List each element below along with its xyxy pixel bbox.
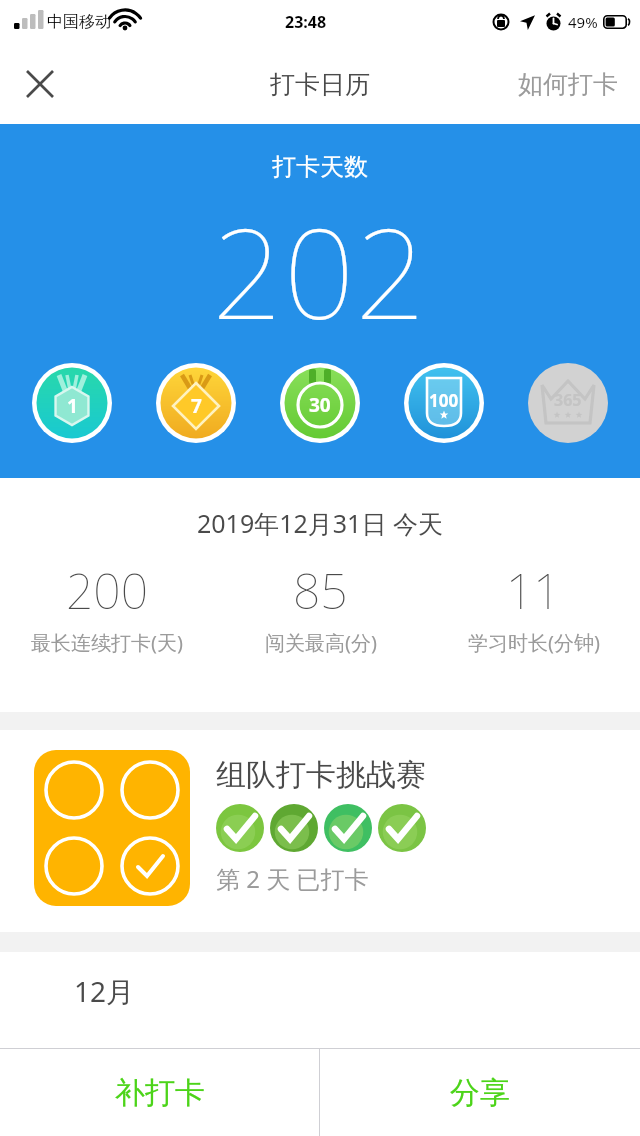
staticText: 85 (293, 558, 348, 623)
button[interactable]: 100 day badge (404, 363, 484, 443)
staticText: 23:48 (285, 11, 327, 33)
staticText: 闯关最高(分) (265, 629, 377, 656)
staticText: 补打卡 (115, 1074, 205, 1112)
other: 7 day badge (156, 363, 236, 443)
staticText: 2019年12月31日 今天 (197, 506, 443, 540)
staticText: 1 (67, 393, 78, 419)
staticText: 30 (309, 392, 331, 418)
other: 1 day badge (32, 363, 112, 443)
staticText: 中国移动 (47, 12, 111, 32)
button[interactable]: 7 day badge (156, 363, 236, 443)
staticText: 最长连续打卡(天) (31, 629, 183, 656)
staticText: 365 (554, 389, 582, 411)
staticText: 100 (429, 389, 459, 412)
staticText: 12月 (74, 972, 135, 1010)
button[interactable]: 如何打卡 (514, 61, 622, 108)
staticText: 打卡日历 (270, 69, 370, 100)
button[interactable]: 分享 (320, 1049, 640, 1136)
other: 30 day badge (280, 363, 360, 443)
button[interactable]: 1 day badge (32, 363, 112, 443)
button[interactable]: Close (12, 56, 68, 112)
staticText: 学习时长(分钟) (468, 629, 600, 656)
button[interactable]: 365 day badge locked (528, 363, 608, 443)
staticText: 打卡天数 (272, 152, 368, 182)
other: 100 day badge (404, 363, 484, 443)
staticText: 202 (212, 186, 428, 355)
staticText: 11 (506, 558, 561, 623)
staticText: 200 (66, 558, 149, 623)
staticText: 49% (568, 12, 598, 32)
staticText: 如何打卡 (518, 69, 618, 100)
button[interactable]: 30 day badge (280, 363, 360, 443)
button[interactable]: 组队打卡挑战赛 (0, 730, 640, 932)
staticText: 组队打卡挑战赛 (216, 756, 426, 794)
staticText: 7 (191, 393, 202, 419)
staticText: 第 2 天 已打卡 (216, 862, 369, 895)
other: 365 day badge locked (528, 363, 608, 443)
button[interactable]: 补打卡 (0, 1049, 319, 1136)
staticText: 分享 (450, 1074, 510, 1112)
